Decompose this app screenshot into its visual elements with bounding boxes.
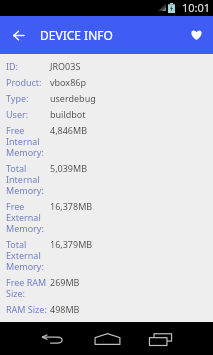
staticText: Product: (6, 77, 50, 88)
button[interactable]: Favorite (184, 22, 208, 46)
button[interactable]: Total Internal Memory: (0, 161, 213, 199)
staticText: 5,039MB (50, 163, 88, 174)
button[interactable]: Type: (0, 91, 213, 107)
staticText: Free External Memory: (6, 201, 50, 234)
button[interactable]: Product: (0, 75, 213, 91)
staticText: buildbot (50, 109, 86, 120)
staticText: 4,846MB (50, 125, 88, 136)
staticText: 498MB (50, 304, 80, 315)
staticText: vbox86p (50, 77, 86, 88)
staticText: Free RAM Size: (6, 277, 50, 299)
button[interactable]: Free Internal Memory: (0, 123, 213, 161)
button[interactable]: Recent apps (142, 322, 213, 355)
staticText: RAM Size: (6, 304, 50, 315)
staticText: Type: (6, 93, 50, 104)
button[interactable]: Home (71, 322, 142, 355)
button[interactable]: RAM Size: (0, 302, 213, 318)
staticText: JRO03S (50, 61, 81, 72)
staticText: 269MB (50, 277, 80, 288)
staticText: ID: (6, 61, 50, 72)
staticText: 16,379MB (50, 239, 93, 250)
button[interactable]: ID: (0, 59, 213, 75)
button[interactable]: Free RAM Size: (0, 275, 213, 302)
button[interactable]: Back (0, 322, 71, 355)
staticText: Total External Memory: (6, 239, 50, 272)
staticText: Free Internal Memory: (6, 125, 50, 158)
staticText: DEVICE INFO (40, 27, 113, 43)
staticText: userdebug (50, 93, 96, 104)
staticText: 16,378MB (50, 201, 93, 212)
button[interactable]: Free External Memory: (0, 199, 213, 237)
button[interactable]: Back (6, 23, 30, 47)
staticText: Total Internal Memory: (6, 163, 50, 196)
button[interactable]: Total External Memory: (0, 237, 213, 275)
button[interactable]: User: (0, 107, 213, 123)
staticText: 10:01 (182, 0, 211, 15)
staticText: User: (6, 109, 50, 120)
